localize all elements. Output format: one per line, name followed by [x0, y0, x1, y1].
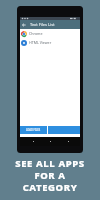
button[interactable]: Recents: [63, 137, 73, 146]
button[interactable]: Back: [20, 20, 28, 29]
staticText: Chrome: [29, 31, 43, 36]
button[interactable]: LOAD FILES: [20, 126, 47, 134]
button[interactable]: Home: [45, 137, 55, 146]
staticText: SEE ALL APPS FOR A CATEGORY: [15, 157, 85, 194]
button[interactable]: Back: [28, 137, 38, 146]
button[interactable]: Chrome: [20, 29, 80, 38]
staticText: LOAD FILES: [26, 128, 41, 132]
staticText: Text Files List: [30, 22, 55, 27]
button[interactable]: HTML Viewer: [20, 38, 80, 47]
staticText: HTML Viewer: [29, 40, 52, 45]
